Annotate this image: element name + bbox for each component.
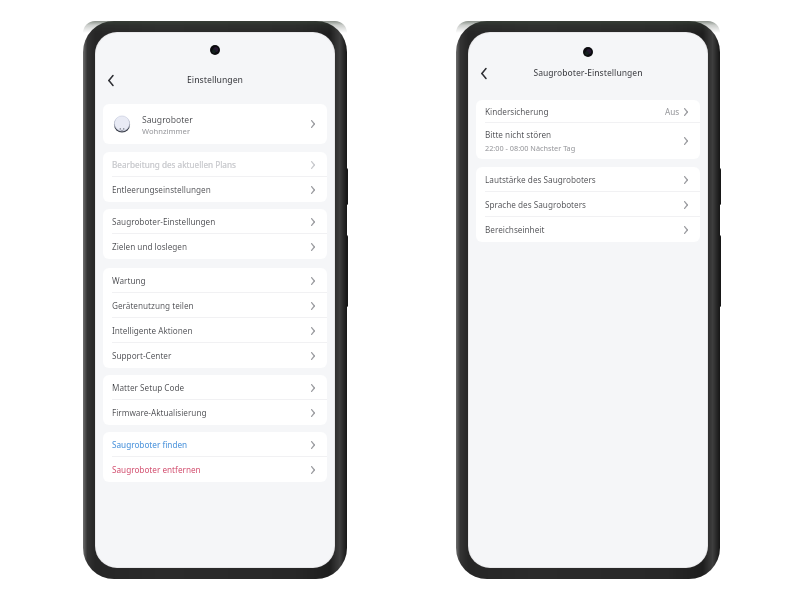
button[interactable]: Entleerungseinstellungen [103,177,327,202]
staticText: Sprache des Saugroboters [485,199,587,210]
staticText: Bereichseinheit [485,224,545,235]
button[interactable]: Gerätenutzung teilen [103,293,327,318]
staticText: 22:00 - 08:00 Nächster Tag [485,143,576,153]
staticText: Support-Center [112,350,172,361]
staticText: Bearbeitung des aktuellen Plans [112,159,236,170]
button[interactable]: Wartung [103,268,327,293]
button[interactable]: Firmware-Aktualisierung [103,400,327,425]
staticText: Matter Setup Code [112,382,185,393]
button[interactable]: Matter Setup Code [103,375,327,400]
button[interactable]: Saugroboter entfernen [103,457,327,482]
button[interactable]: Bereichseinheit [476,217,700,242]
staticText: Wohnzimmer [142,126,191,136]
staticText: Bitte nicht stören [485,129,552,140]
staticText: Kindersicherung [485,106,549,117]
staticText: Zielen und loslegen [112,241,188,252]
button[interactable]: Saugroboter finden [103,432,327,457]
staticText: Saugroboter-Einstellungen [469,67,707,79]
staticText: Entleerungseinstellungen [112,184,211,195]
button[interactable]: Lautstärke des Saugroboters [476,167,700,192]
staticText: Aus [665,106,680,117]
staticText: Saugroboter [142,114,193,126]
button[interactable]: Bitte nicht stören [476,123,700,159]
button[interactable]: Kindersicherung [476,100,700,123]
staticText: Saugroboter-Einstellungen [112,216,216,227]
button[interactable]: Bearbeitung des aktuellen Plans [103,152,327,177]
staticText: Wartung [112,275,146,286]
button[interactable]: Zielen und loslegen [103,234,327,259]
staticText: Lautstärke des Saugroboters [485,174,596,185]
button[interactable]: Support-Center [103,343,327,368]
button[interactable]: Back [473,63,493,83]
staticText: Firmware-Aktualisierung [112,407,207,418]
button[interactable]: Intelligente Aktionen [103,318,327,343]
staticText: Saugroboter finden [112,439,188,450]
staticText: Saugroboter entfernen [112,464,201,475]
button[interactable]: Saugroboter-Einstellungen [103,209,327,234]
staticText: Einstellungen [96,74,334,86]
button[interactable]: Back [100,70,120,90]
button[interactable]: Sprache des Saugroboters [476,192,700,217]
staticText: Intelligente Aktionen [112,325,193,336]
staticText: Gerätenutzung teilen [112,300,194,311]
button[interactable]: Saugroboter [103,104,327,144]
